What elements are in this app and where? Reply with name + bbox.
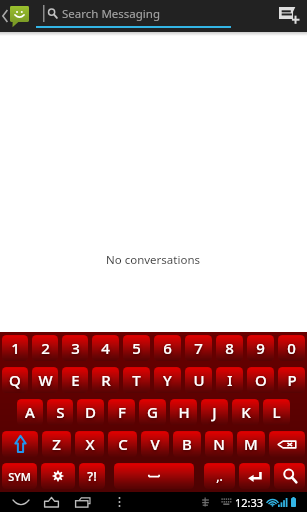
button[interactable]: SYM [2, 463, 37, 489]
staticText: N [213, 434, 225, 454]
button[interactable]: Home [36, 492, 67, 512]
staticText: Y [163, 370, 172, 390]
staticText: 2 [41, 338, 50, 358]
button[interactable]: Y [154, 367, 181, 393]
staticText: ,. [216, 468, 223, 484]
button[interactable]: Recent apps [67, 492, 98, 512]
button[interactable]: ,. [204, 463, 235, 489]
button[interactable]: Q [2, 367, 28, 393]
staticText: 7 [194, 338, 203, 358]
staticText: Z [52, 434, 61, 454]
button[interactable]: W [32, 367, 58, 393]
button[interactable]: B [173, 431, 201, 457]
button[interactable]: Backspace [269, 431, 305, 457]
button[interactable]: 8 [216, 335, 243, 361]
staticText: P [287, 370, 297, 390]
button[interactable]: S [47, 399, 73, 425]
button[interactable]: Search Messaging [36, 0, 232, 32]
button[interactable]: K [232, 399, 259, 425]
staticText: 8 [225, 338, 234, 358]
staticText: G [147, 402, 158, 422]
staticText: K [241, 402, 251, 422]
staticText: A [25, 402, 35, 422]
staticText: Search Messaging [62, 6, 160, 22]
button[interactable]: 7 [185, 335, 212, 361]
staticText: 4 [101, 338, 110, 358]
button[interactable]: 3 [62, 335, 88, 361]
button[interactable]: 5 [123, 335, 150, 361]
button[interactable]: I [216, 367, 243, 393]
staticText: W [38, 370, 53, 390]
staticText: 9 [256, 338, 265, 358]
staticText: B [182, 434, 192, 454]
staticText: SYM [8, 469, 31, 484]
staticText: R [101, 370, 111, 390]
staticText: O [255, 370, 267, 390]
button[interactable]: U [185, 367, 212, 393]
button[interactable]: ?! [79, 463, 105, 489]
button[interactable]: F [108, 399, 135, 425]
staticText: 3 [71, 338, 80, 358]
staticText: 1 [11, 338, 20, 358]
staticText: H [178, 402, 190, 422]
button[interactable]: Space [114, 463, 194, 489]
button[interactable]: More options [110, 492, 128, 512]
staticText: ?! [87, 467, 97, 485]
staticText: 0 [287, 338, 296, 358]
staticText: J [212, 402, 217, 422]
button[interactable]: Shift [2, 431, 38, 457]
button[interactable]: 0 [278, 335, 305, 361]
button[interactable]: N [205, 431, 233, 457]
button[interactable]: J [201, 399, 228, 425]
button[interactable]: 9 [247, 335, 274, 361]
staticText: 5 [132, 338, 141, 358]
staticText: F [118, 402, 126, 422]
button[interactable]: Up [0, 0, 33, 32]
button[interactable]: Z [42, 431, 71, 457]
staticText: I [227, 370, 233, 390]
button[interactable]: T [123, 367, 150, 393]
button[interactable]: R [92, 367, 119, 393]
staticText: D [85, 402, 96, 422]
button[interactable]: 4 [92, 335, 119, 361]
button[interactable]: P [278, 367, 305, 393]
staticText: E [71, 370, 80, 390]
button[interactable]: Hide keyboard [5, 492, 36, 512]
button[interactable]: Enter [239, 463, 270, 489]
staticText: 6 [163, 338, 172, 358]
button[interactable]: E [62, 367, 88, 393]
staticText: U [193, 370, 205, 390]
staticText: C [118, 434, 128, 454]
button[interactable]: L [263, 399, 290, 425]
button[interactable]: C [108, 431, 137, 457]
button[interactable]: X [75, 431, 104, 457]
staticText: V [150, 434, 160, 454]
button[interactable]: A [17, 399, 43, 425]
staticText: No conversations [106, 252, 201, 268]
button[interactable]: D [77, 399, 104, 425]
staticText: 12:33 [235, 495, 264, 510]
staticText: M [244, 434, 258, 454]
button[interactable]: 2 [32, 335, 58, 361]
button[interactable]: 1 [2, 335, 28, 361]
button[interactable]: G [139, 399, 166, 425]
button[interactable]: H [170, 399, 197, 425]
button[interactable]: O [247, 367, 274, 393]
staticText: T [132, 370, 141, 390]
staticText: X [85, 434, 95, 454]
button[interactable]: 6 [154, 335, 181, 361]
staticText: S [56, 402, 65, 422]
button[interactable]: Settings [41, 463, 75, 489]
button[interactable]: New message [261, 0, 307, 32]
staticText: L [272, 402, 281, 422]
button[interactable]: M [237, 431, 265, 457]
staticText: Q [9, 370, 21, 390]
button[interactable]: V [141, 431, 169, 457]
button[interactable]: Search [274, 463, 305, 489]
